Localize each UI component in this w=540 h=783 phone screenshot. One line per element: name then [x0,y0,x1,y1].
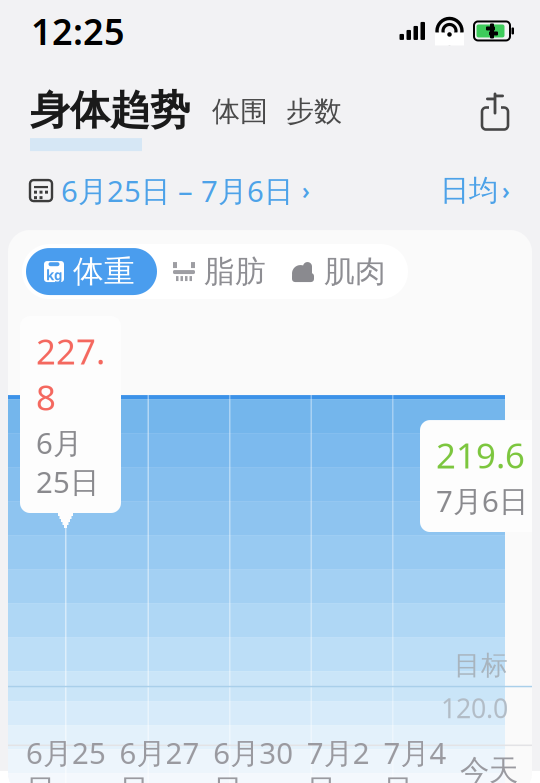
staticText: 7月2日 [307,733,370,783]
staticText: › [302,175,310,206]
staticText: 体重 [73,253,135,290]
staticText: 6月25日 – 7月6日 [61,171,293,210]
staticText: kg [46,266,62,284]
staticText: › [502,175,510,206]
staticText: 今天 [460,752,518,783]
staticText: 7月6日 [436,481,528,520]
button[interactable]: 肌肉 [276,248,404,295]
staticText: 227.8 [36,328,105,420]
staticText: 120.0 [441,690,508,726]
button[interactable]: 分享 [480,92,510,144]
button[interactable]: 身体趋势 [30,86,190,151]
button[interactable]: 6月25日 – 7月6日 [30,171,310,210]
staticText: 日均 [440,173,498,209]
button[interactable]: 体围 [190,94,268,143]
button[interactable]: kg [26,248,157,295]
button[interactable]: 日均 [440,173,510,209]
staticText: 目标 [454,649,508,682]
button[interactable]: 步数 [268,94,342,143]
staticText: 6月30日 [213,733,293,783]
staticText: 219.6 [436,432,525,478]
staticText: 12:25 [31,7,125,55]
button[interactable]: 脂肪 [157,248,276,295]
staticText: 6月27日 [120,733,200,783]
staticText: 7月4日 [383,733,446,783]
staticText: 步数 [286,94,342,129]
staticText: 6月25日 [36,423,99,501]
staticText: 体围 [212,94,268,129]
staticText: 脂肪 [204,253,266,290]
staticText: 6月25日 [26,733,106,783]
staticText: 肌肉 [324,253,386,290]
staticText: 身体趋势 [30,86,190,135]
